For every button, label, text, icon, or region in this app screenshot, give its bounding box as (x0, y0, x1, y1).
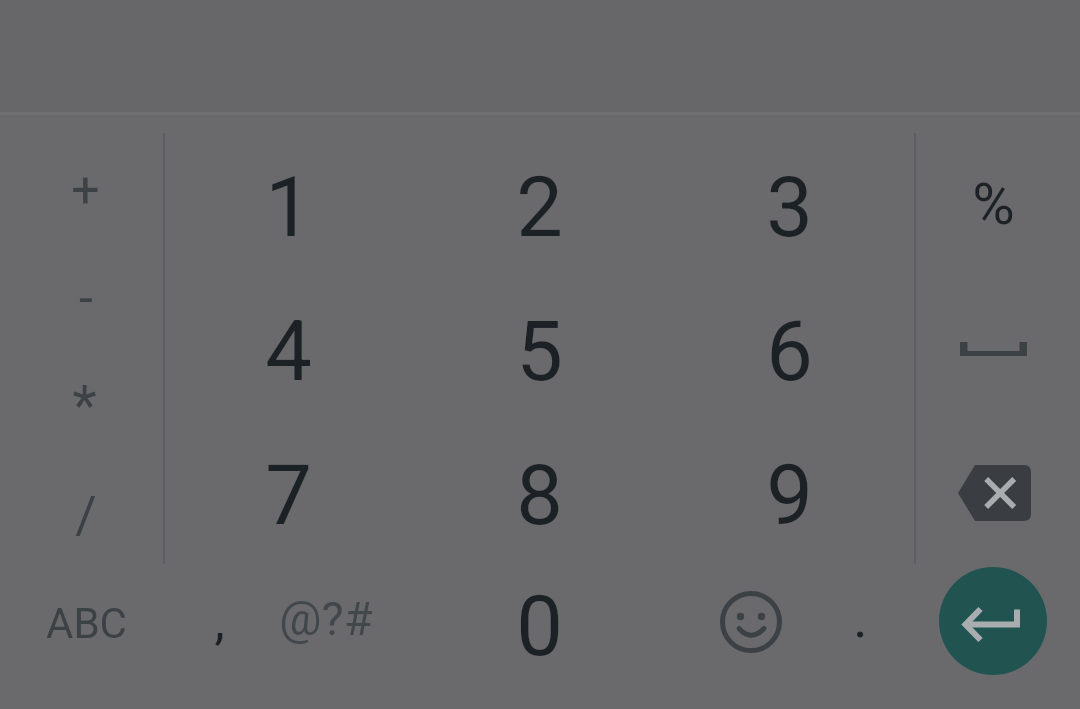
button[interactable]: , (169, 561, 269, 681)
button[interactable]: . (815, 558, 905, 678)
staticText: / (75, 485, 97, 546)
staticText: . (853, 585, 868, 651)
staticText: 1 (265, 159, 312, 256)
button[interactable]: 7 (163, 421, 413, 569)
button[interactable]: Space (911, 279, 1076, 419)
button[interactable]: 2 (414, 133, 664, 281)
button[interactable]: ABC (5, 563, 168, 683)
button[interactable]: 0 (414, 553, 664, 699)
staticText: * (72, 373, 97, 439)
button[interactable]: 5 (414, 277, 664, 425)
button[interactable]: % (911, 134, 1076, 274)
button[interactable]: @?# (251, 558, 401, 678)
staticText: 9 (766, 447, 813, 544)
button[interactable]: 9 (664, 421, 914, 569)
staticText: ABC (46, 599, 127, 648)
button[interactable]: 1 (163, 133, 413, 281)
staticText: 7 (265, 447, 312, 544)
button[interactable]: 4 (163, 277, 413, 425)
staticText: 5 (516, 303, 563, 400)
button[interactable]: Backspace (912, 423, 1077, 563)
staticText: 4 (265, 303, 312, 400)
staticText: 8 (516, 447, 563, 544)
staticText: , (214, 591, 225, 652)
button[interactable]: * (3, 351, 166, 461)
button[interactable]: 8 (414, 421, 664, 569)
staticText: - (79, 269, 93, 328)
staticText: % (972, 170, 1015, 238)
staticText: @?# (279, 591, 373, 646)
staticText: 3 (766, 159, 813, 256)
staticText: 6 (766, 303, 813, 400)
staticText: 0 (516, 578, 563, 675)
staticText: + (71, 161, 100, 220)
button[interactable]: Enter (939, 567, 1047, 675)
button[interactable]: + (4, 135, 167, 245)
staticText: 2 (516, 159, 563, 256)
button[interactable]: 3 (664, 133, 914, 281)
button[interactable]: 6 (664, 277, 914, 425)
button[interactable]: Emoji (691, 562, 811, 682)
button[interactable]: / (4, 455, 167, 575)
